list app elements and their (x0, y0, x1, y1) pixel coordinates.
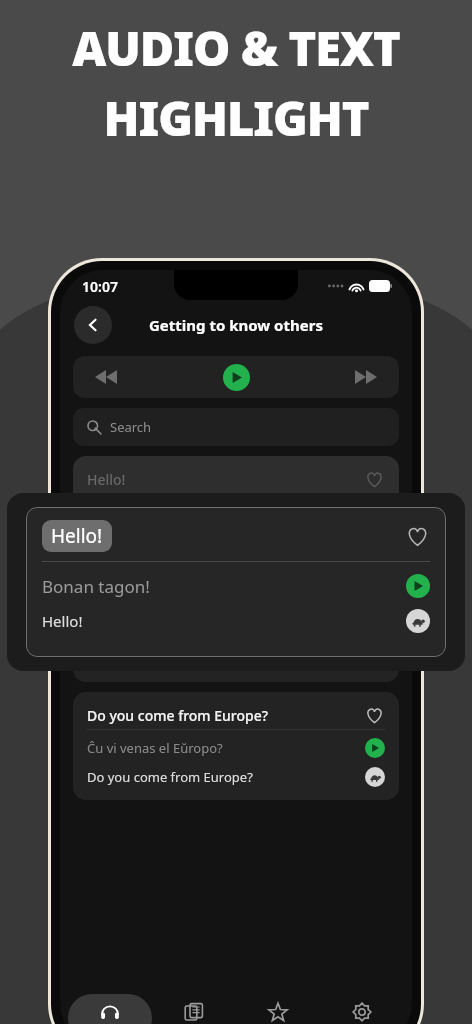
staticText: Hello! (87, 532, 365, 550)
staticText: Do you come from Europe? (87, 768, 365, 786)
staticText: Do you come from Europe? (87, 706, 363, 725)
staticText: Hello! (51, 523, 103, 549)
button[interactable]: Settings (320, 994, 404, 1024)
staticText: Hello! (87, 470, 363, 489)
button[interactable]: Favorite (404, 523, 430, 549)
button[interactable]: Lessons (68, 994, 152, 1024)
staticText: 10:07 (82, 277, 118, 296)
button[interactable]: Favorite (363, 468, 385, 490)
button[interactable]: Hello! (73, 456, 399, 564)
button[interactable]: Play phrase (365, 738, 385, 758)
button[interactable]: Rewind (73, 356, 399, 398)
button[interactable]: Search (73, 408, 399, 446)
staticText: Hello! (42, 611, 406, 631)
staticText: AUDIO & TEXT (72, 16, 400, 80)
button[interactable]: Play slowly (365, 649, 385, 669)
staticText: HIGHLIGHT (103, 86, 369, 150)
button[interactable]: Do you come from Europe? (73, 692, 399, 800)
button[interactable]: Play phrase (365, 502, 385, 522)
staticText: Search (110, 418, 152, 436)
other: Forward (355, 370, 377, 384)
button[interactable]: Play slowly (365, 767, 385, 787)
staticText: Ĉu vi venas el Eŭropo? (87, 739, 365, 757)
staticText: How are you? (87, 588, 363, 607)
staticText: Bonan tagon! (87, 503, 365, 521)
button[interactable]: Play phrase (406, 574, 430, 598)
button[interactable]: Play slowly (406, 609, 430, 633)
staticText: Bonan tagon! (42, 575, 406, 598)
button[interactable]: Favorite (363, 704, 385, 726)
button[interactable]: Play (223, 364, 250, 391)
button[interactable]: How are you? (73, 574, 399, 682)
button[interactable]: Favorites (236, 994, 320, 1024)
button[interactable]: Hello! (26, 507, 446, 657)
button[interactable]: Flashcards (152, 994, 236, 1024)
staticText: How are you? (87, 650, 365, 668)
button[interactable]: Back (74, 306, 112, 344)
staticText: Getting to know others (149, 315, 323, 335)
other: Rewind (95, 370, 117, 384)
